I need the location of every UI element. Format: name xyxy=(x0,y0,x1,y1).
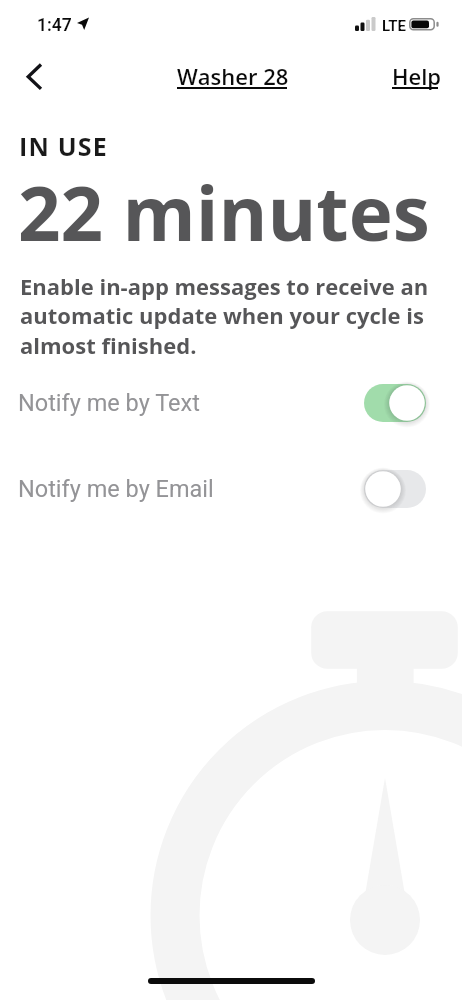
staticText: Notify me by Text xyxy=(18,389,200,417)
staticText: Enable in-app messages to receive an aut… xyxy=(20,271,440,361)
staticText: Notify me by Email xyxy=(18,475,214,503)
button[interactable]: Notify me by Email xyxy=(0,469,462,509)
staticText: IN USE xyxy=(19,129,108,163)
button[interactable]: Notify me by Text xyxy=(0,383,462,423)
staticText: Help xyxy=(392,61,442,91)
button[interactable]: Washer 28 xyxy=(177,66,289,96)
button[interactable]: Help xyxy=(392,66,442,96)
staticText: 1:47 xyxy=(37,15,72,36)
staticText: 22 minutes xyxy=(18,161,430,262)
staticText: Washer 28 xyxy=(177,61,289,91)
button[interactable]: Back xyxy=(10,56,48,96)
staticText: LTE xyxy=(382,17,407,35)
